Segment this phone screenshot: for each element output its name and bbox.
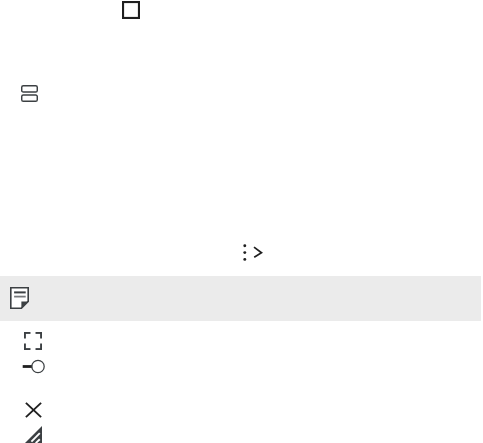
button[interactable]: More options [241, 243, 249, 263]
button[interactable]: Next [252, 245, 264, 259]
button[interactable]: Stop [122, 1, 140, 19]
button[interactable]: Close [25, 402, 42, 418]
button[interactable]: Note [10, 287, 29, 309]
button[interactable]: Split screen [21, 85, 38, 102]
button[interactable]: Signal strength [24, 426, 42, 443]
button[interactable] [0, 276, 481, 321]
button[interactable]: Toggle [22, 359, 45, 374]
button[interactable]: Fullscreen [24, 332, 42, 350]
